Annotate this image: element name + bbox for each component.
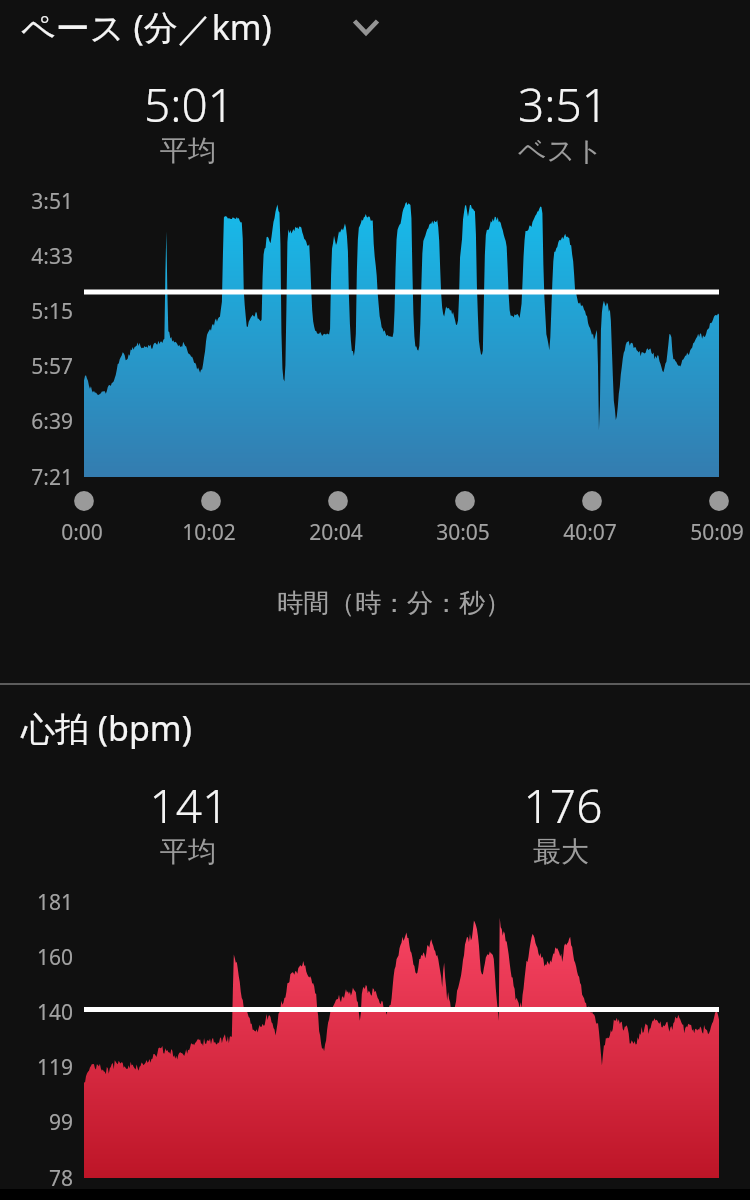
staticText: 平均 [38,834,338,869]
button[interactable]: ペース (分／km) [0,1,750,53]
staticText: 176 [413,774,713,837]
staticText: 6:39 [0,407,73,436]
staticText: 5:57 [0,352,73,381]
button[interactable]: 心拍 (bpm) [0,702,750,754]
staticText: 最大 [411,834,711,869]
staticText: 99 [0,1108,73,1137]
staticText: ペース (分／km) [21,4,272,50]
button[interactable]: 心拍 (bpm) [84,901,719,1178]
staticText: 3:51 [413,73,713,136]
staticText: 50:09 [617,518,750,547]
staticText: 119 [0,1053,73,1082]
staticText: 140 [0,998,73,1027]
staticText: 7:21 [0,463,73,492]
staticText: 160 [0,943,73,972]
staticText: 5:15 [0,297,73,326]
other: Change metric [346,7,386,47]
button[interactable]: ペース (分／km) [84,200,719,477]
staticText: 30:05 [363,518,563,547]
staticText: 20:04 [236,518,436,547]
staticText: 40:07 [490,518,690,547]
staticText: 141 [39,774,339,837]
staticText: ベスト [411,133,711,168]
staticText: 78 [0,1164,73,1193]
staticText: 10:02 [109,518,309,547]
staticText: 平均 [38,133,338,168]
staticText: 心拍 (bpm) [21,705,192,751]
staticText: 0:00 [0,518,182,547]
staticText: 5:01 [39,73,339,136]
staticText: 時間（時：分：秒） [144,587,644,620]
staticText: 181 [0,888,73,917]
staticText: 3:51 [0,187,73,216]
staticText: 4:33 [0,242,73,271]
